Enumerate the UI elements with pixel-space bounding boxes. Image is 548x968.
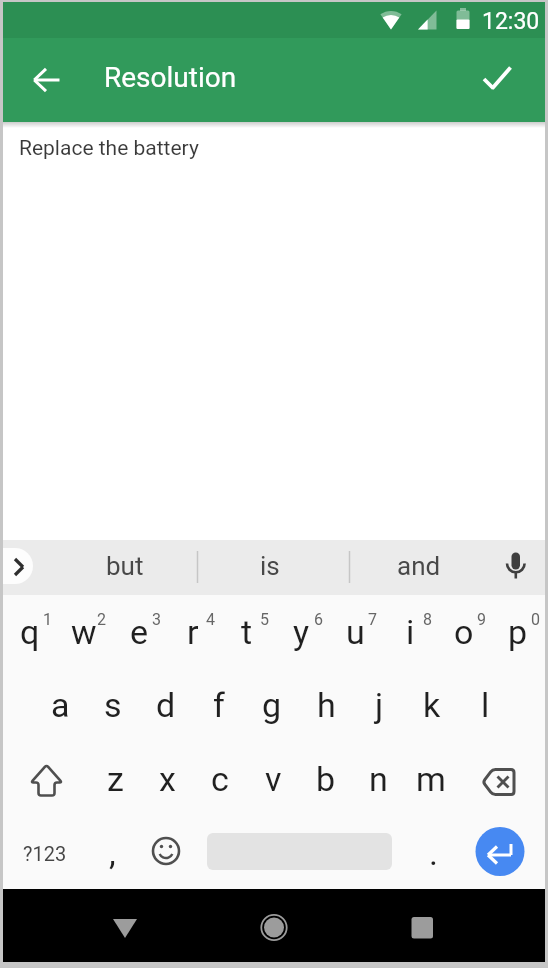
staticText: Replace the battery [19,136,199,161]
staticText: 6 [314,610,323,629]
staticText: y [293,612,310,652]
staticText: 8 [423,610,432,629]
staticText: z [107,759,124,799]
staticText: i [406,612,415,652]
staticText: s [104,685,122,725]
staticText: m [416,759,446,799]
staticText: v [265,759,282,799]
staticText: , [109,833,116,873]
staticText: 0 [531,610,540,629]
staticText: is [260,551,280,581]
staticText: c [211,759,229,799]
staticText: 4 [206,610,215,629]
staticText: but [106,551,144,581]
staticText: . [429,833,438,873]
staticText: 3 [152,610,161,629]
staticText: Resolution [104,61,237,94]
staticText: j [375,685,384,725]
staticText: 9 [477,610,486,629]
staticText: w [71,612,97,652]
staticText: e [130,612,149,652]
staticText: 5 [260,610,269,629]
staticText: d [156,685,176,725]
staticText: and [397,551,441,581]
staticText: q [20,612,40,652]
staticText: g [262,685,282,725]
staticText: f [213,685,225,725]
staticText: k [423,685,441,725]
staticText: r [187,612,199,652]
staticText: t [241,612,253,652]
staticText: ?123 [23,842,67,865]
staticText: 12:30 [482,8,540,35]
staticText: x [159,759,176,799]
staticText: 1 [43,610,52,629]
staticText: u [346,612,365,652]
staticText: a [51,685,70,725]
staticText: n [369,759,388,799]
staticText: h [317,685,336,725]
staticText: 2 [97,610,106,629]
staticText: l [481,685,490,725]
staticText: p [508,612,528,652]
staticText: b [316,759,336,799]
staticText: 7 [368,610,377,629]
staticText: o [454,612,474,652]
